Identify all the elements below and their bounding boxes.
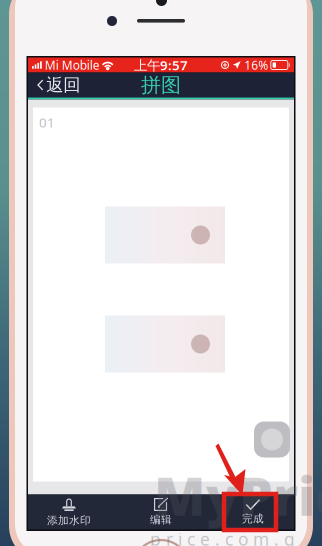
staticText: 01: [39, 113, 55, 131]
staticText: 16%: [244, 57, 268, 73]
staticText: 返回: [46, 74, 80, 96]
button[interactable]: AssistiveTouch: [254, 421, 290, 457]
staticText: 添加水印: [47, 514, 91, 527]
button[interactable]: 返回: [28, 72, 89, 97]
button[interactable]: 完成: [220, 494, 286, 529]
button[interactable]: 添加水印: [36, 494, 102, 529]
staticText: 编辑: [150, 513, 172, 526]
staticText: 拼图: [141, 73, 181, 97]
staticText: 上午9:57: [134, 56, 188, 74]
staticText: p r i c e . c o m . q: [150, 527, 295, 546]
staticText: Mi Mobile: [45, 57, 100, 73]
button[interactable]: 编辑: [128, 494, 194, 529]
staticText: MyPrice: [154, 460, 322, 530]
staticText: 完成: [242, 512, 264, 525]
